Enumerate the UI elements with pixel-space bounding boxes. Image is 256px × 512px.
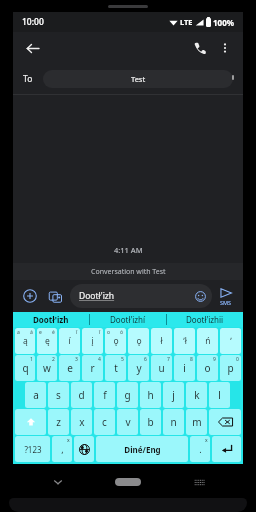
button[interactable]: Call (189, 37, 211, 59)
staticText: é (52, 329, 55, 336)
button[interactable]: h (140, 382, 161, 408)
staticText: í (68, 335, 71, 347)
button[interactable]: w (37, 355, 57, 381)
button[interactable]: z (48, 409, 69, 435)
button[interactable]: c (94, 409, 115, 435)
button[interactable]: q (15, 355, 35, 381)
button[interactable]: Diné/Eng (96, 436, 188, 462)
button[interactable]: i (174, 355, 195, 381)
staticText: á (30, 329, 33, 336)
button[interactable]: Back (21, 37, 43, 59)
button[interactable]: More options (215, 38, 235, 58)
button[interactable]: Send SMS (216, 287, 236, 306)
button[interactable]: í (59, 328, 80, 354)
button[interactable]: m (186, 409, 207, 435)
button[interactable]: y (128, 355, 149, 381)
button[interactable]: a (25, 382, 46, 408)
staticText: Test (131, 74, 146, 84)
button[interactable]: Backspace (209, 409, 241, 435)
button[interactable]: Dootł'izh (13, 312, 89, 327)
button[interactable]: s (48, 382, 69, 408)
button[interactable]: Add attachment (20, 286, 40, 306)
staticText: Dootł'izhii (186, 314, 224, 325)
staticText: ń (205, 335, 211, 347)
button[interactable]: ę (37, 328, 57, 354)
button[interactable]: ʼ (220, 328, 241, 354)
button[interactable]: į (82, 328, 103, 354)
button[interactable]: Test (43, 70, 233, 88)
staticText: x (205, 437, 208, 444)
staticText: s (56, 388, 61, 402)
staticText: k (194, 388, 200, 402)
staticText: 4 (98, 356, 101, 363)
staticText: x (67, 437, 70, 444)
button[interactable]: Change language (74, 436, 94, 462)
staticText: ?123 (24, 444, 42, 455)
staticText: 2 (52, 356, 55, 363)
staticText: l (218, 388, 221, 402)
button[interactable]: b (140, 409, 161, 435)
button[interactable]: Home (115, 478, 141, 486)
staticText: Dootł'izhí (110, 314, 146, 325)
button[interactable]: l (209, 382, 230, 408)
staticText: d (78, 388, 85, 402)
staticText: r (90, 361, 95, 375)
button[interactable]: . (190, 436, 210, 462)
staticText: y (136, 361, 142, 375)
button[interactable]: ʼł (174, 328, 195, 354)
staticText: į (91, 335, 94, 347)
staticText: 4:11 AM (114, 245, 143, 255)
button[interactable]: Enter (212, 436, 241, 462)
button[interactable]: ?123 (15, 436, 50, 462)
staticText: b (147, 415, 154, 429)
button[interactable]: j (163, 382, 184, 408)
button[interactable]: d (71, 382, 92, 408)
button[interactable]: Gallery (45, 286, 65, 306)
staticText: 100% (213, 17, 234, 28)
button[interactable]: , (52, 436, 72, 462)
button[interactable]: Shift (15, 409, 46, 435)
button[interactable]: g (117, 382, 138, 408)
staticText: ǫ (113, 335, 119, 347)
staticText: ʼ (230, 335, 232, 347)
staticText: g (124, 388, 131, 402)
button[interactable]: ǫ (105, 328, 126, 354)
staticText: a (17, 329, 20, 336)
button[interactable]: ń (197, 328, 218, 354)
button[interactable]: f (94, 382, 115, 408)
staticText: 8 (190, 356, 193, 363)
button[interactable]: ǫ (128, 328, 149, 354)
staticText: SMS (220, 299, 232, 306)
button[interactable]: ł (151, 328, 172, 354)
staticText: o (107, 329, 111, 336)
staticText: e (39, 329, 42, 336)
staticText: LTE (180, 17, 193, 27)
button[interactable]: r (82, 355, 103, 381)
button[interactable]: t (105, 355, 126, 381)
button[interactable]: n (163, 409, 184, 435)
staticText: 9 (213, 356, 216, 363)
staticText: ą (23, 335, 28, 347)
staticText: 5 (121, 356, 124, 363)
button[interactable]: e (59, 355, 80, 381)
staticText: c (102, 415, 107, 429)
button[interactable]: Dootł'izhii (167, 312, 243, 327)
staticText: p (227, 361, 234, 375)
button[interactable]: Dootł'izhí (90, 312, 166, 327)
button[interactable]: o (197, 355, 218, 381)
button[interactable]: Hide keyboard (46, 470, 70, 494)
button[interactable]: p (220, 355, 241, 381)
button[interactable]: v (117, 409, 138, 435)
staticText: ł (160, 335, 163, 347)
staticText: o (204, 361, 211, 375)
staticText: ǫ (136, 335, 142, 347)
button[interactable]: Dootł'izh (70, 284, 212, 308)
staticText: n (170, 415, 177, 429)
staticText: ó (120, 329, 124, 336)
button[interactable]: Switch keyboard (187, 470, 211, 494)
staticText: 6 (144, 356, 147, 363)
button[interactable]: k (186, 382, 207, 408)
button[interactable]: u (151, 355, 172, 381)
button[interactable]: x (71, 409, 92, 435)
button[interactable]: ą (15, 328, 35, 354)
